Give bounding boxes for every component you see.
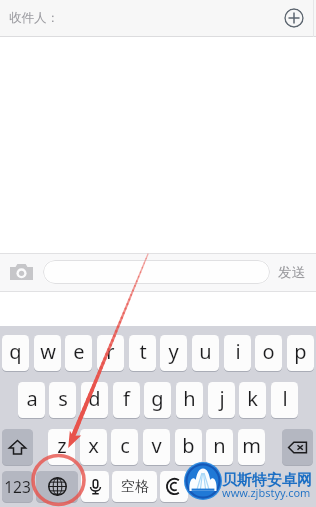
button[interactable]: a xyxy=(18,382,45,418)
button[interactable]: z xyxy=(48,429,75,465)
staticText: b xyxy=(182,432,195,459)
button[interactable]: p xyxy=(287,335,314,371)
button[interactable]: d xyxy=(81,382,108,418)
button[interactable]: k xyxy=(239,382,266,418)
staticText: o xyxy=(262,338,275,365)
button[interactable]: x xyxy=(80,429,107,465)
staticText: 收件人： xyxy=(9,10,59,26)
button[interactable]: b xyxy=(175,429,202,465)
staticText: 贝斯特安卓网 xyxy=(222,471,312,490)
button[interactable]: Emoji xyxy=(160,471,188,502)
staticText: g xyxy=(151,385,164,412)
button[interactable]: e xyxy=(65,335,92,371)
button[interactable]: r xyxy=(97,335,124,371)
staticText: 123 xyxy=(4,476,31,497)
button[interactable]: n xyxy=(206,429,233,465)
staticText: y xyxy=(168,338,179,365)
button[interactable]: i xyxy=(224,335,251,371)
button[interactable]: t xyxy=(129,335,156,371)
staticText: n xyxy=(213,432,226,459)
button[interactable]: h xyxy=(176,382,203,418)
staticText: u xyxy=(199,338,212,365)
staticText: l xyxy=(282,385,288,412)
staticText: c xyxy=(120,432,130,459)
button[interactable]: s xyxy=(49,382,76,418)
button[interactable]: Switch keyboard xyxy=(36,471,78,502)
button[interactable]: v xyxy=(143,429,170,465)
button[interactable]: l xyxy=(271,382,298,418)
staticText: 空格 xyxy=(121,478,149,496)
button[interactable]: w xyxy=(34,335,61,371)
staticText: j xyxy=(219,385,225,412)
button[interactable] xyxy=(43,260,270,284)
staticText: e xyxy=(73,338,85,365)
button[interactable]: j xyxy=(208,382,235,418)
button[interactable]: 123 xyxy=(2,471,33,502)
button[interactable]: Shift xyxy=(2,429,33,465)
staticText: p xyxy=(294,338,307,365)
staticText: a xyxy=(26,385,38,412)
staticText: f xyxy=(123,385,130,412)
staticText: k xyxy=(247,385,258,412)
staticText: h xyxy=(183,385,196,412)
button[interactable]: y xyxy=(160,335,187,371)
button[interactable]: Camera xyxy=(10,264,33,280)
staticText: i xyxy=(235,338,241,365)
staticText: r xyxy=(106,338,115,365)
button[interactable]: 发送 xyxy=(278,264,305,281)
button[interactable]: Backspace xyxy=(282,429,313,465)
button[interactable]: g xyxy=(144,382,171,418)
button[interactable]: u xyxy=(192,335,219,371)
button[interactable]: o xyxy=(255,335,282,371)
button[interactable]: Voice input xyxy=(81,471,109,502)
button[interactable]: c xyxy=(111,429,138,465)
staticText: v xyxy=(151,432,162,459)
staticText: www.zjbstyy.com xyxy=(222,485,311,500)
staticText: w xyxy=(40,338,56,365)
staticText: d xyxy=(88,385,101,412)
staticText: t xyxy=(139,338,147,365)
button[interactable]: q xyxy=(2,335,29,371)
button[interactable]: 空格 xyxy=(112,471,157,502)
staticText: q xyxy=(9,338,22,365)
staticText: x xyxy=(88,432,99,459)
staticText: 发送 xyxy=(278,264,305,281)
button[interactable]: f xyxy=(113,382,140,418)
staticText: z xyxy=(57,432,67,459)
staticText: m xyxy=(242,432,261,459)
button[interactable]: m xyxy=(238,429,265,465)
staticText: s xyxy=(58,385,68,412)
button[interactable]: Add recipient xyxy=(284,8,304,28)
